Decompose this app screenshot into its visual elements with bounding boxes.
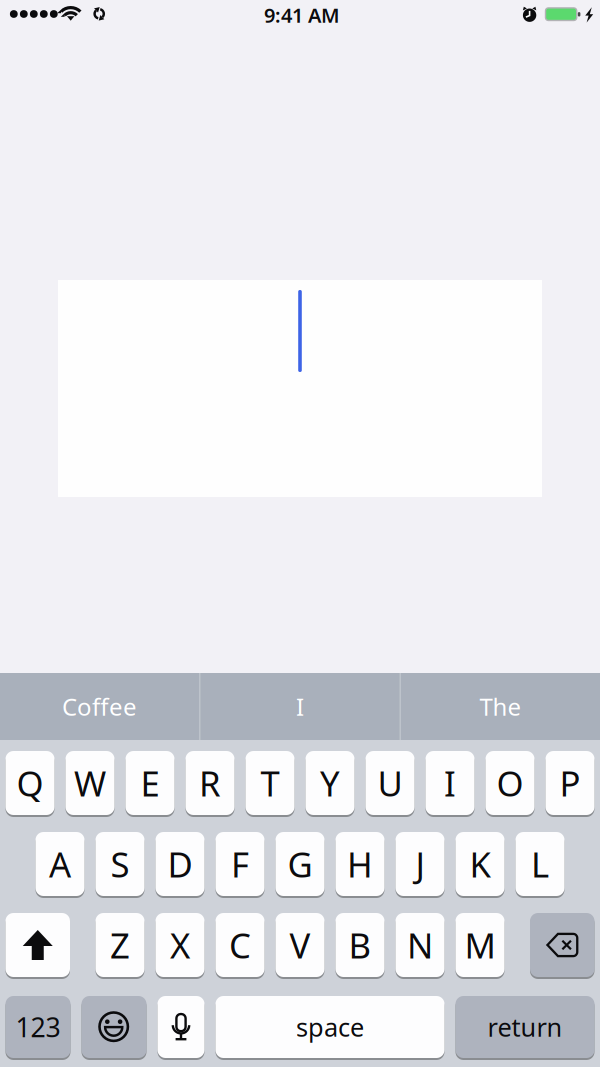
button[interactable]: O	[485, 751, 534, 815]
staticText: P	[559, 760, 580, 806]
button[interactable]: Y	[305, 751, 354, 815]
button[interactable]: D	[155, 832, 204, 896]
button[interactable]: Z	[95, 913, 144, 977]
staticText: Y	[320, 760, 340, 806]
staticText: H	[347, 841, 373, 887]
button[interactable]: X	[155, 913, 204, 977]
staticText: Z	[110, 922, 130, 968]
staticText: The	[479, 691, 521, 722]
button[interactable]: F	[215, 832, 264, 896]
staticText: K	[469, 841, 490, 887]
button[interactable]: K	[455, 832, 504, 896]
button[interactable]: H	[335, 832, 384, 896]
staticText: G	[287, 841, 312, 887]
staticText: S	[110, 841, 129, 887]
staticText: W	[74, 760, 106, 806]
staticText: E	[140, 760, 159, 806]
button[interactable]: Dictate	[157, 996, 204, 1058]
staticText: Q	[16, 760, 43, 806]
staticText: C	[229, 922, 251, 968]
button[interactable]: Delete	[530, 913, 594, 977]
staticText: space	[296, 1010, 364, 1044]
staticText: X	[170, 922, 190, 968]
staticText: Coffee	[62, 691, 137, 722]
button[interactable]: J	[395, 832, 444, 896]
button[interactable]: G	[275, 832, 324, 896]
staticText: F	[231, 841, 249, 887]
staticText: I	[296, 691, 304, 722]
button[interactable]: I	[200, 673, 400, 740]
staticText: R	[199, 760, 221, 806]
button[interactable]: A	[35, 832, 84, 896]
button[interactable]: W	[65, 751, 114, 815]
button[interactable]: space	[215, 996, 444, 1058]
button[interactable]: Shift	[5, 913, 70, 977]
staticText: D	[167, 841, 192, 887]
button[interactable]: C	[215, 913, 264, 977]
staticText: T	[260, 760, 279, 806]
button[interactable]: 123	[5, 996, 70, 1058]
staticText: O	[496, 760, 523, 806]
staticText: U	[377, 760, 402, 806]
button[interactable]: Emoji	[81, 996, 146, 1058]
button[interactable]: V	[275, 913, 324, 977]
button[interactable]: Coffee	[0, 673, 199, 740]
button[interactable]: S	[95, 832, 144, 896]
button[interactable]: U	[365, 751, 414, 815]
button[interactable]: N	[395, 913, 444, 977]
staticText: L	[531, 841, 549, 887]
staticText: V	[289, 922, 310, 968]
button[interactable]: return	[455, 996, 594, 1058]
staticText: 123	[15, 1009, 60, 1045]
staticText: M	[464, 922, 495, 968]
button[interactable]: R	[185, 751, 234, 815]
button[interactable]: T	[245, 751, 294, 815]
button[interactable]: L	[515, 832, 564, 896]
button[interactable]: I	[425, 751, 474, 815]
button[interactable]: P	[545, 751, 594, 815]
staticText: A	[49, 841, 71, 887]
staticText: 9:41 AM	[264, 2, 340, 28]
button[interactable]: B	[335, 913, 384, 977]
staticText: N	[407, 922, 433, 968]
button[interactable]: The	[401, 673, 600, 740]
staticText: J	[415, 841, 424, 887]
staticText: I	[444, 760, 456, 806]
staticText: return	[487, 1010, 562, 1044]
button[interactable]: E	[125, 751, 174, 815]
staticText: B	[348, 922, 371, 968]
button[interactable]: Q	[5, 751, 54, 815]
button[interactable]: M	[455, 913, 504, 977]
